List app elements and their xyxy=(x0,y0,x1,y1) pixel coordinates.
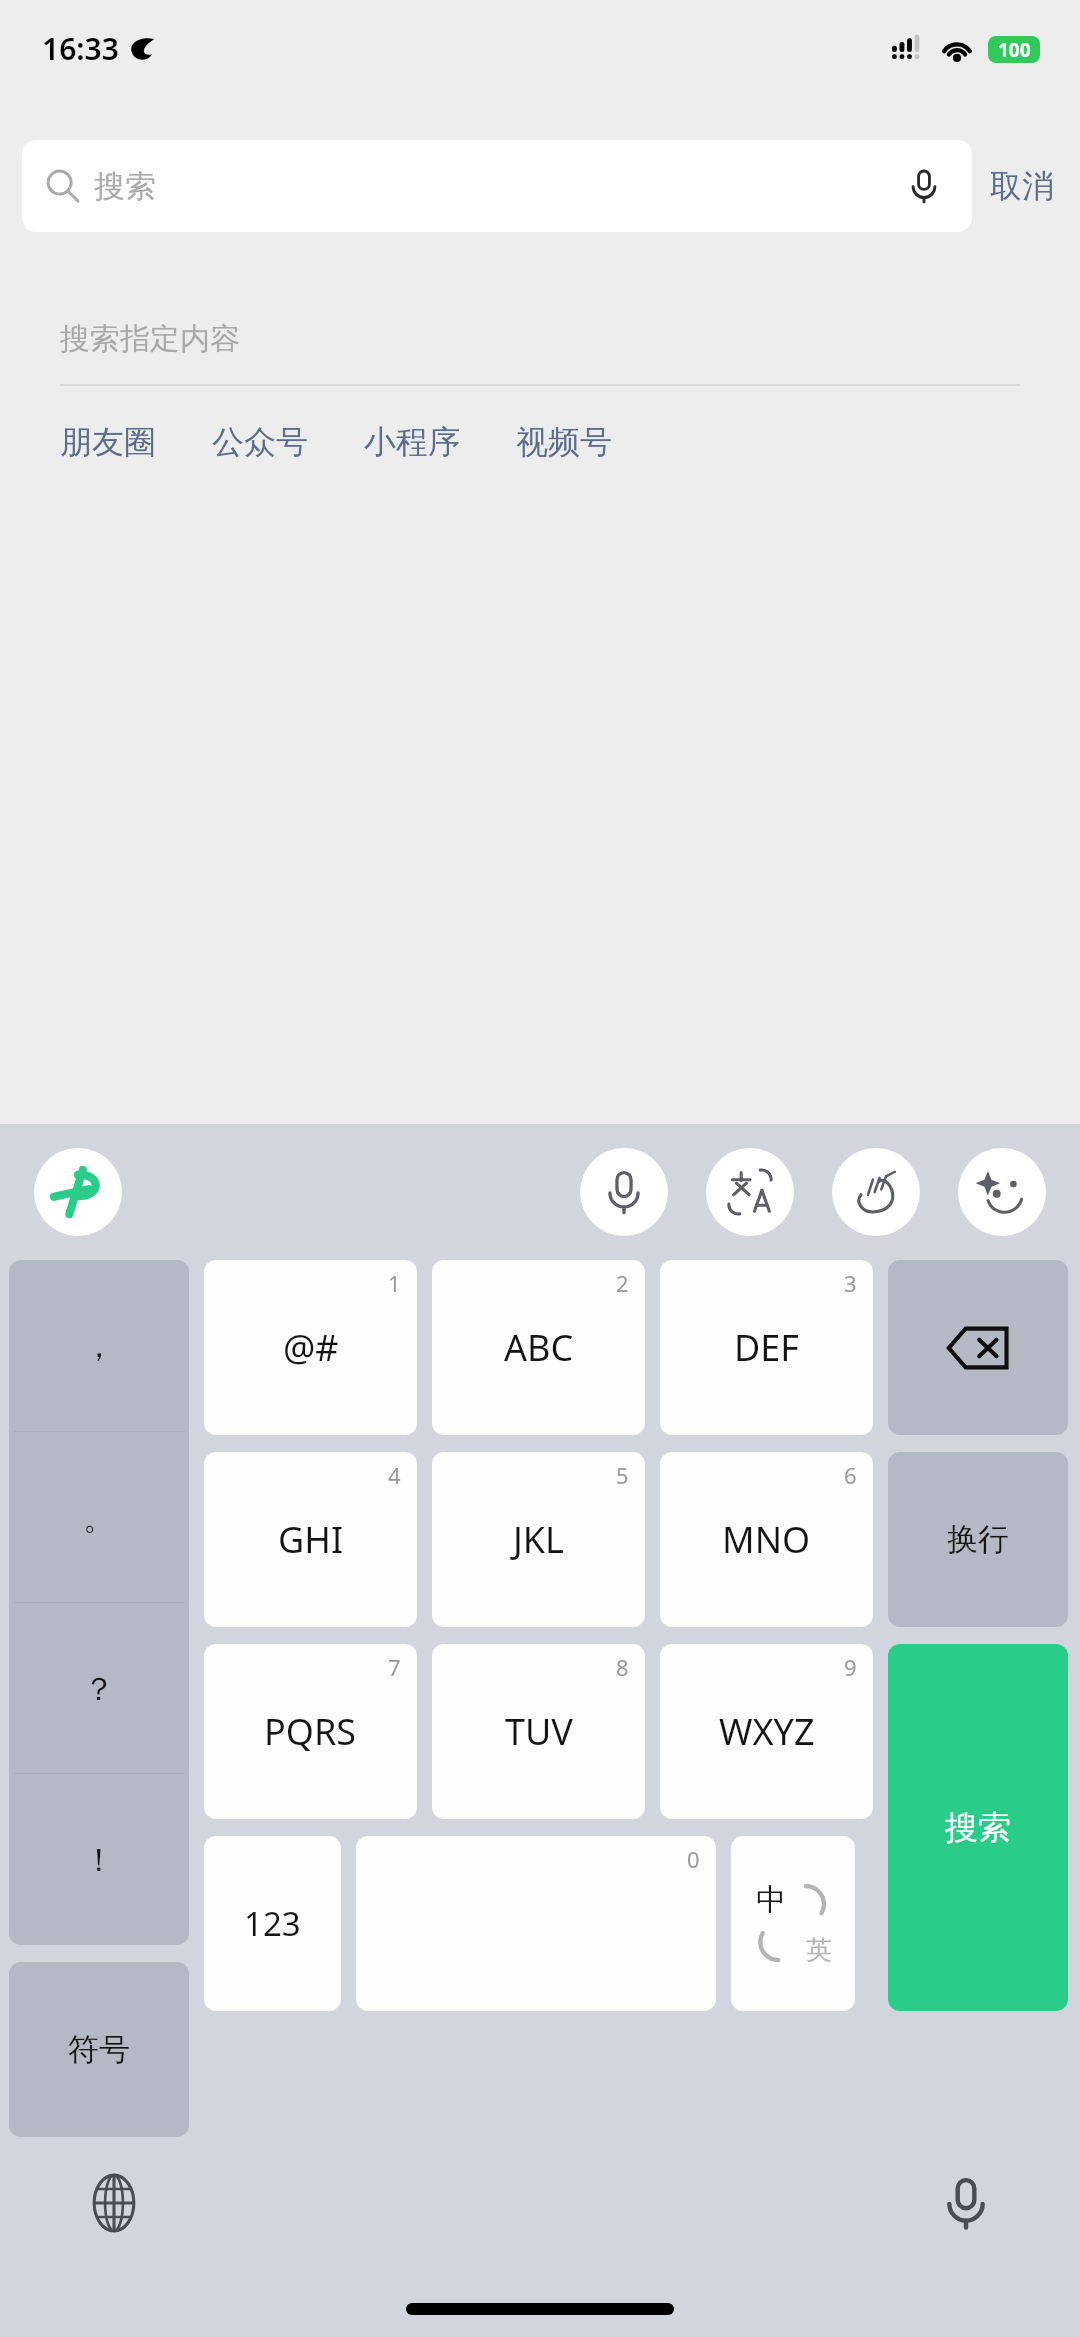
button[interactable]: Dictation xyxy=(930,2167,1002,2239)
button[interactable]: 搜索 xyxy=(22,140,972,232)
staticText: 4 xyxy=(388,1460,401,1490)
staticText: 123 xyxy=(244,1901,301,1946)
staticText: 小程序 xyxy=(364,422,460,462)
staticText: DEF xyxy=(734,1323,799,1372)
staticText: 1 xyxy=(388,1268,401,1298)
staticText: MNO xyxy=(722,1515,811,1564)
staticText: 0 xyxy=(687,1844,700,1874)
button[interactable]: Input method xyxy=(34,1148,122,1236)
staticText: 5 xyxy=(616,1460,629,1490)
button[interactable]: Emoji xyxy=(958,1148,1046,1236)
button[interactable]: 搜索 xyxy=(888,1644,1068,2011)
button[interactable]: 小程序 xyxy=(364,416,516,468)
button[interactable]: 公众号 xyxy=(212,416,364,468)
staticText: JKL xyxy=(513,1515,564,1564)
button[interactable]: Voice input xyxy=(580,1148,668,1236)
staticText: 2 xyxy=(616,1268,629,1298)
staticText: ？ xyxy=(83,1669,115,1709)
staticText: 视频号 xyxy=(516,422,612,462)
staticText: 100 xyxy=(998,37,1031,63)
button[interactable]: 符号 xyxy=(9,1962,189,2137)
staticText: PQRS xyxy=(264,1707,357,1756)
staticText: 朋友圈 xyxy=(60,422,156,462)
staticText: 搜索指定内容 xyxy=(60,320,240,358)
button[interactable]: 视频号 xyxy=(516,416,668,468)
staticText: GHI xyxy=(278,1515,344,1564)
staticText: 换行 xyxy=(947,1520,1009,1559)
button[interactable]: 。 xyxy=(9,1432,189,1603)
button[interactable]: Space xyxy=(356,1836,716,2011)
staticText: 搜索 xyxy=(945,1807,1011,1849)
staticText: ， xyxy=(83,1326,115,1366)
staticText: 搜索 xyxy=(94,167,156,206)
button[interactable]: ？ xyxy=(9,1603,189,1774)
button[interactable]: 朋友圈 xyxy=(60,416,212,468)
button[interactable]: 7 xyxy=(204,1644,417,1819)
button[interactable]: 123 xyxy=(204,1836,341,2011)
button[interactable]: Backspace xyxy=(888,1260,1068,1435)
button[interactable]: 4 xyxy=(204,1452,417,1627)
staticText: 16:33 xyxy=(42,28,119,69)
button[interactable]: 1 xyxy=(204,1260,417,1435)
button[interactable]: Translate xyxy=(706,1148,794,1236)
button[interactable]: 6 xyxy=(660,1452,873,1627)
button[interactable]: 8 xyxy=(432,1644,645,1819)
staticText: 中 xyxy=(756,1881,786,1919)
button[interactable]: 换行 xyxy=(888,1452,1068,1627)
staticText: ABC xyxy=(504,1323,574,1372)
button[interactable]: Voice search xyxy=(900,162,948,210)
staticText: @# xyxy=(283,1323,339,1372)
staticText: 符号 xyxy=(68,2030,130,2069)
button[interactable]: 取消 xyxy=(972,156,1062,216)
staticText: 9 xyxy=(844,1652,857,1682)
staticText: TUV xyxy=(505,1707,573,1756)
button[interactable]: 9 xyxy=(660,1644,873,1819)
button[interactable]: ！ xyxy=(9,1774,189,1945)
staticText: 8 xyxy=(616,1652,629,1682)
staticText: 6 xyxy=(844,1460,857,1490)
staticText: WXYZ xyxy=(719,1707,815,1756)
button[interactable]: ， xyxy=(9,1260,189,1432)
staticText: 3 xyxy=(844,1268,857,1298)
staticText: 公众号 xyxy=(212,422,308,462)
button[interactable]: 2 xyxy=(432,1260,645,1435)
button[interactable]: Switch keyboard language xyxy=(78,2167,150,2239)
button[interactable]: Handwriting xyxy=(832,1148,920,1236)
staticText: 7 xyxy=(388,1652,401,1682)
staticText: 英 xyxy=(806,1934,832,1967)
button[interactable]: 3 xyxy=(660,1260,873,1435)
button[interactable]: Chinese English toggle xyxy=(731,1836,855,2011)
button[interactable]: 5 xyxy=(432,1452,645,1627)
staticText: ！ xyxy=(83,1840,115,1880)
staticText: 。 xyxy=(83,1498,115,1538)
staticText: 取消 xyxy=(990,166,1054,206)
